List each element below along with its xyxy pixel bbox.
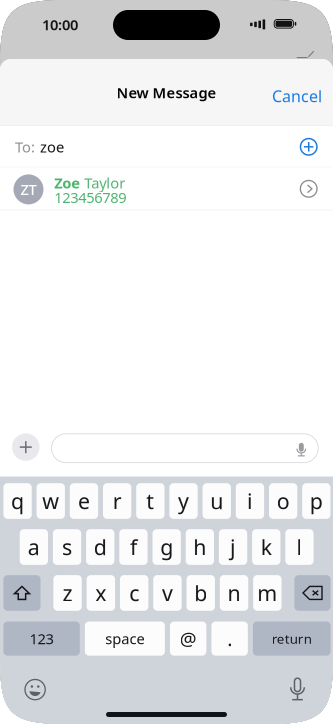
- staticText: a: [28, 533, 40, 561]
- staticText: y: [178, 487, 189, 515]
- button[interactable]: l: [285, 529, 314, 565]
- staticText: d: [94, 533, 107, 561]
- staticText: Cancel: [272, 85, 322, 107]
- staticText: b: [194, 579, 207, 607]
- button[interactable]: space: [85, 621, 165, 656]
- staticText: p: [310, 487, 323, 515]
- staticText: m: [257, 579, 277, 607]
- button[interactable]: Dictation: [281, 670, 313, 702]
- staticText: ZT: [20, 180, 36, 199]
- button[interactable]: b: [186, 575, 215, 611]
- staticText: n: [227, 579, 240, 607]
- staticText: i: [247, 487, 253, 515]
- staticText: u: [210, 487, 223, 515]
- staticText: k: [261, 533, 272, 561]
- button[interactable]: y: [169, 483, 198, 519]
- staticText: s: [62, 533, 72, 561]
- button[interactable]: n: [220, 575, 248, 611]
- staticText: o: [277, 487, 290, 515]
- button[interactable]: ZT: [0, 168, 333, 210]
- staticText: To:: [15, 137, 35, 157]
- button[interactable]: Add attachment: [12, 433, 40, 461]
- button[interactable]: z: [53, 575, 82, 611]
- button[interactable]: f: [119, 529, 148, 565]
- button[interactable]: g: [152, 529, 181, 565]
- staticText: z: [62, 579, 72, 607]
- staticText: g: [160, 533, 173, 561]
- button[interactable]: p: [302, 483, 330, 519]
- staticText: h: [193, 533, 206, 561]
- button[interactable]: Emoji: [19, 674, 51, 706]
- staticText: j: [230, 533, 236, 561]
- staticText: w: [42, 487, 59, 515]
- staticText: 10:00: [42, 15, 78, 34]
- button[interactable]: u: [203, 483, 231, 519]
- staticText: 123456789: [54, 187, 126, 207]
- button[interactable]: i: [236, 483, 264, 519]
- button[interactable]: o: [269, 483, 297, 519]
- staticText: .: [227, 625, 232, 652]
- button[interactable]: Delete: [294, 575, 331, 611]
- button[interactable]: d: [86, 529, 114, 565]
- staticText: v: [162, 579, 173, 607]
- staticText: r: [113, 487, 122, 515]
- staticText: space: [105, 629, 144, 648]
- button[interactable]: e: [70, 483, 98, 519]
- staticText: q: [11, 487, 24, 515]
- button[interactable]: .: [211, 621, 248, 656]
- button[interactable]: Add contact: [294, 132, 324, 162]
- staticText: return: [272, 630, 312, 647]
- button[interactable]: return: [253, 621, 331, 656]
- staticText: f: [130, 533, 137, 561]
- button[interactable]: Cancel: [262, 81, 322, 111]
- staticText: @: [180, 626, 197, 651]
- button[interactable]: h: [186, 529, 214, 565]
- staticText: Zoe: [54, 173, 80, 193]
- button[interactable]: a: [20, 529, 48, 565]
- staticText: New Message: [116, 83, 216, 102]
- button[interactable]: @: [170, 621, 206, 656]
- button[interactable]: j: [219, 529, 247, 565]
- button[interactable]: 123: [3, 621, 80, 656]
- button[interactable]: s: [53, 529, 81, 565]
- button[interactable]: Shift: [3, 575, 40, 611]
- staticText: zoe: [40, 137, 64, 157]
- staticText: Taylor: [80, 173, 125, 193]
- staticText: x: [95, 579, 106, 607]
- staticText: e: [78, 487, 90, 515]
- button[interactable]: x: [87, 575, 115, 611]
- button[interactable]: w: [37, 483, 65, 519]
- staticText: l: [296, 533, 302, 561]
- staticText: c: [129, 579, 139, 607]
- button[interactable]: m: [253, 575, 282, 611]
- staticText: 123: [30, 629, 54, 648]
- staticText: t: [146, 487, 154, 515]
- button[interactable]: v: [153, 575, 182, 611]
- button[interactable]: q: [3, 483, 32, 519]
- button[interactable]: k: [252, 529, 280, 565]
- button[interactable]: r: [103, 483, 131, 519]
- button[interactable]: c: [120, 575, 148, 611]
- button[interactable]: t: [136, 483, 164, 519]
